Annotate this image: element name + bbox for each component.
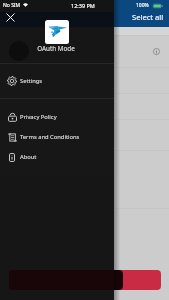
staticText: Select all <box>132 12 164 22</box>
button[interactable] <box>0 119 169 150</box>
button[interactable]: Terms and Conditions <box>0 127 114 147</box>
button[interactable]: Settings <box>0 64 114 98</box>
staticText: OAuth Mode <box>0 44 113 53</box>
staticText: Privacy Policy <box>20 113 57 121</box>
button[interactable]: Select all <box>124 11 169 23</box>
button[interactable]: Info <box>0 35 169 67</box>
staticText: 100% <box>136 2 149 9</box>
button[interactable] <box>0 208 169 267</box>
staticText: Settings <box>20 77 43 85</box>
button[interactable]: About <box>0 147 114 167</box>
button[interactable] <box>0 67 169 93</box>
button[interactable]: Privacy Policy <box>0 107 114 127</box>
staticText: 12:39 PM <box>71 2 95 9</box>
button[interactable] <box>0 93 169 119</box>
button[interactable] <box>9 270 161 290</box>
staticText: No SIM <box>3 2 21 9</box>
button[interactable]: Close <box>6 13 15 22</box>
button[interactable]: Info <box>151 46 162 57</box>
staticText: About <box>20 153 37 161</box>
staticText: Terms and Conditions <box>20 133 80 141</box>
button[interactable] <box>0 150 169 208</box>
